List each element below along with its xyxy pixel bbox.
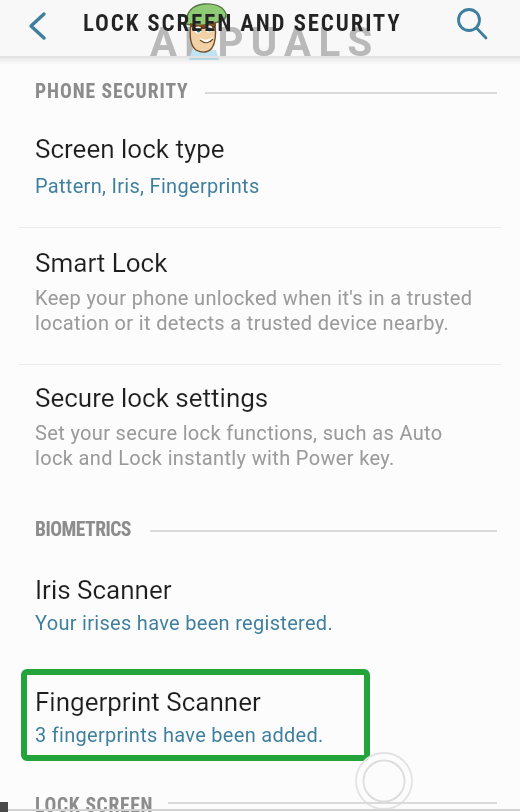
staticText: LOCK SCREEN AND SECURITY <box>83 10 402 37</box>
staticText: location or it detects a trusted device … <box>35 311 450 334</box>
staticText: Your irises have been registered. <box>35 611 333 634</box>
staticText: Keep your phone unlocked when it's in a … <box>35 286 473 309</box>
staticText: Set your secure lock functions, such as … <box>35 421 443 444</box>
staticText: 3 fingerprints have been added. <box>35 723 324 746</box>
staticText: Screen lock type <box>35 134 225 164</box>
staticText: APPUALS <box>150 19 380 66</box>
staticText: PHONE SECURITY <box>35 80 189 103</box>
staticText: Iris Scanner <box>35 575 172 605</box>
staticText: Fingerprint Scanner <box>35 687 261 717</box>
staticText: Pattern, Iris, Fingerprints <box>35 174 260 197</box>
staticText: Smart Lock <box>35 248 168 278</box>
staticText: lock and Lock instantly with Power key. <box>35 446 395 469</box>
staticText: BIOMETRICS <box>35 518 131 541</box>
staticText: Secure lock settings <box>35 383 269 413</box>
staticText: LOCK SCREEN <box>35 794 154 812</box>
